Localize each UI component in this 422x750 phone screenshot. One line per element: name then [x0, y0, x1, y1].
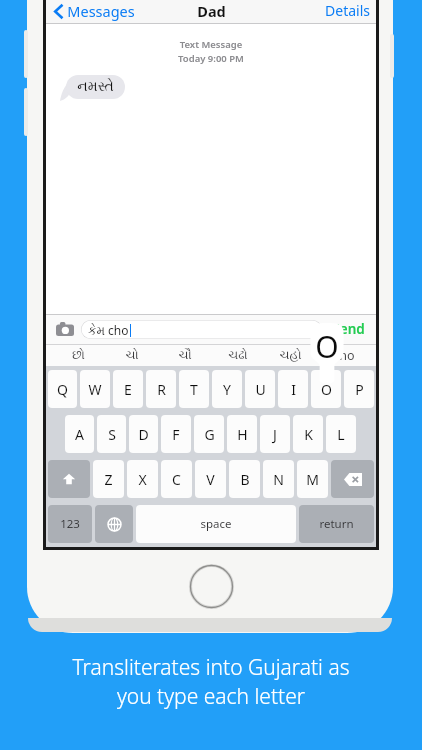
- staticText: A: [75, 425, 84, 444]
- button[interactable]: Messages: [46, 1, 139, 21]
- staticText: S: [108, 425, 116, 444]
- staticText: નમસ્તે: [77, 80, 114, 94]
- button[interactable]: છો: [52, 344, 105, 366]
- staticText: P: [355, 380, 364, 399]
- staticText: R: [157, 380, 166, 399]
- button[interactable]: L: [326, 415, 356, 453]
- staticText: you type each letter: [0, 682, 422, 711]
- staticText: કેમ cho: [88, 322, 129, 338]
- staticText: D: [138, 425, 149, 444]
- button[interactable]: C: [161, 460, 192, 498]
- button[interactable]: cho: [317, 344, 370, 366]
- staticText: Messages: [67, 1, 135, 21]
- staticText: છો: [72, 349, 85, 362]
- button[interactable]: Send: [329, 320, 368, 338]
- staticText: space: [200, 516, 232, 532]
- staticText: return: [319, 516, 354, 532]
- button[interactable]: નમસ્તે: [66, 75, 125, 99]
- button[interactable]: કેમ cho: [81, 320, 322, 339]
- staticText: Y: [223, 380, 231, 399]
- button[interactable]: A: [65, 415, 94, 453]
- button[interactable]: ચહો: [264, 344, 317, 366]
- button[interactable]: Details: [319, 1, 376, 20]
- button[interactable]: Take photo: [54, 318, 76, 340]
- staticText: Q: [57, 380, 68, 399]
- staticText: T: [190, 380, 198, 399]
- staticText: B: [240, 470, 250, 489]
- button[interactable]: G: [194, 415, 224, 453]
- button[interactable]: ચૌ: [158, 344, 211, 366]
- staticText: O: [321, 380, 332, 399]
- button[interactable]: return: [299, 505, 374, 543]
- button[interactable]: N: [263, 460, 294, 498]
- staticText: O: [315, 326, 339, 367]
- staticText: W: [88, 380, 102, 399]
- button[interactable]: O: [311, 370, 341, 408]
- staticText: ચહો: [279, 349, 302, 362]
- button[interactable]: P: [344, 370, 374, 408]
- button[interactable]: E: [113, 370, 143, 408]
- button[interactable]: J: [260, 415, 290, 453]
- button[interactable]: Z: [93, 460, 124, 498]
- button[interactable]: T: [179, 370, 209, 408]
- staticText: ચૌ: [178, 349, 192, 362]
- button[interactable]: 123: [48, 505, 92, 543]
- staticText: I: [291, 380, 296, 399]
- button[interactable]: H: [227, 415, 257, 453]
- staticText: Z: [104, 470, 113, 489]
- button[interactable]: B: [229, 460, 260, 498]
- button[interactable]: ચઢો: [211, 344, 264, 366]
- staticText: L: [337, 425, 345, 444]
- staticText: ચઢો: [228, 349, 248, 362]
- button[interactable]: R: [146, 370, 176, 408]
- button[interactable]: Q: [48, 370, 77, 408]
- button[interactable]: M: [297, 460, 328, 498]
- button[interactable]: I: [278, 370, 308, 408]
- button[interactable]: K: [293, 415, 323, 453]
- staticText: U: [255, 380, 266, 399]
- staticText: M: [306, 470, 319, 489]
- staticText: H: [237, 425, 248, 444]
- staticText: J: [273, 425, 277, 444]
- button[interactable]: Y: [212, 370, 242, 408]
- button[interactable]: space: [136, 505, 296, 543]
- staticText: 123: [60, 516, 80, 532]
- staticText: X: [138, 470, 147, 489]
- staticText: Text Message: [46, 38, 376, 51]
- staticText: Today 9:00 PM: [46, 52, 376, 65]
- staticText: V: [206, 470, 215, 489]
- staticText: Dad: [197, 1, 226, 21]
- button[interactable]: Shift: [48, 460, 90, 498]
- staticText: cho: [333, 347, 355, 364]
- button[interactable]: D: [129, 415, 158, 453]
- button[interactable]: S: [97, 415, 126, 453]
- button[interactable]: Switch keyboard: [95, 505, 133, 543]
- staticText: K: [304, 425, 313, 444]
- staticText: F: [172, 425, 180, 444]
- staticText: Transliterates into Gujarati as: [0, 653, 422, 682]
- staticText: E: [124, 380, 132, 399]
- button[interactable]: F: [161, 415, 191, 453]
- staticText: ચો: [125, 349, 139, 362]
- staticText: G: [204, 425, 215, 444]
- staticText: C: [172, 470, 181, 489]
- button[interactable]: W: [80, 370, 110, 408]
- button[interactable]: X: [127, 460, 158, 498]
- button[interactable]: ચો: [105, 344, 158, 366]
- button[interactable]: U: [245, 370, 275, 408]
- button[interactable]: Delete: [331, 460, 374, 498]
- button[interactable]: V: [195, 460, 226, 498]
- staticText: N: [273, 470, 284, 489]
